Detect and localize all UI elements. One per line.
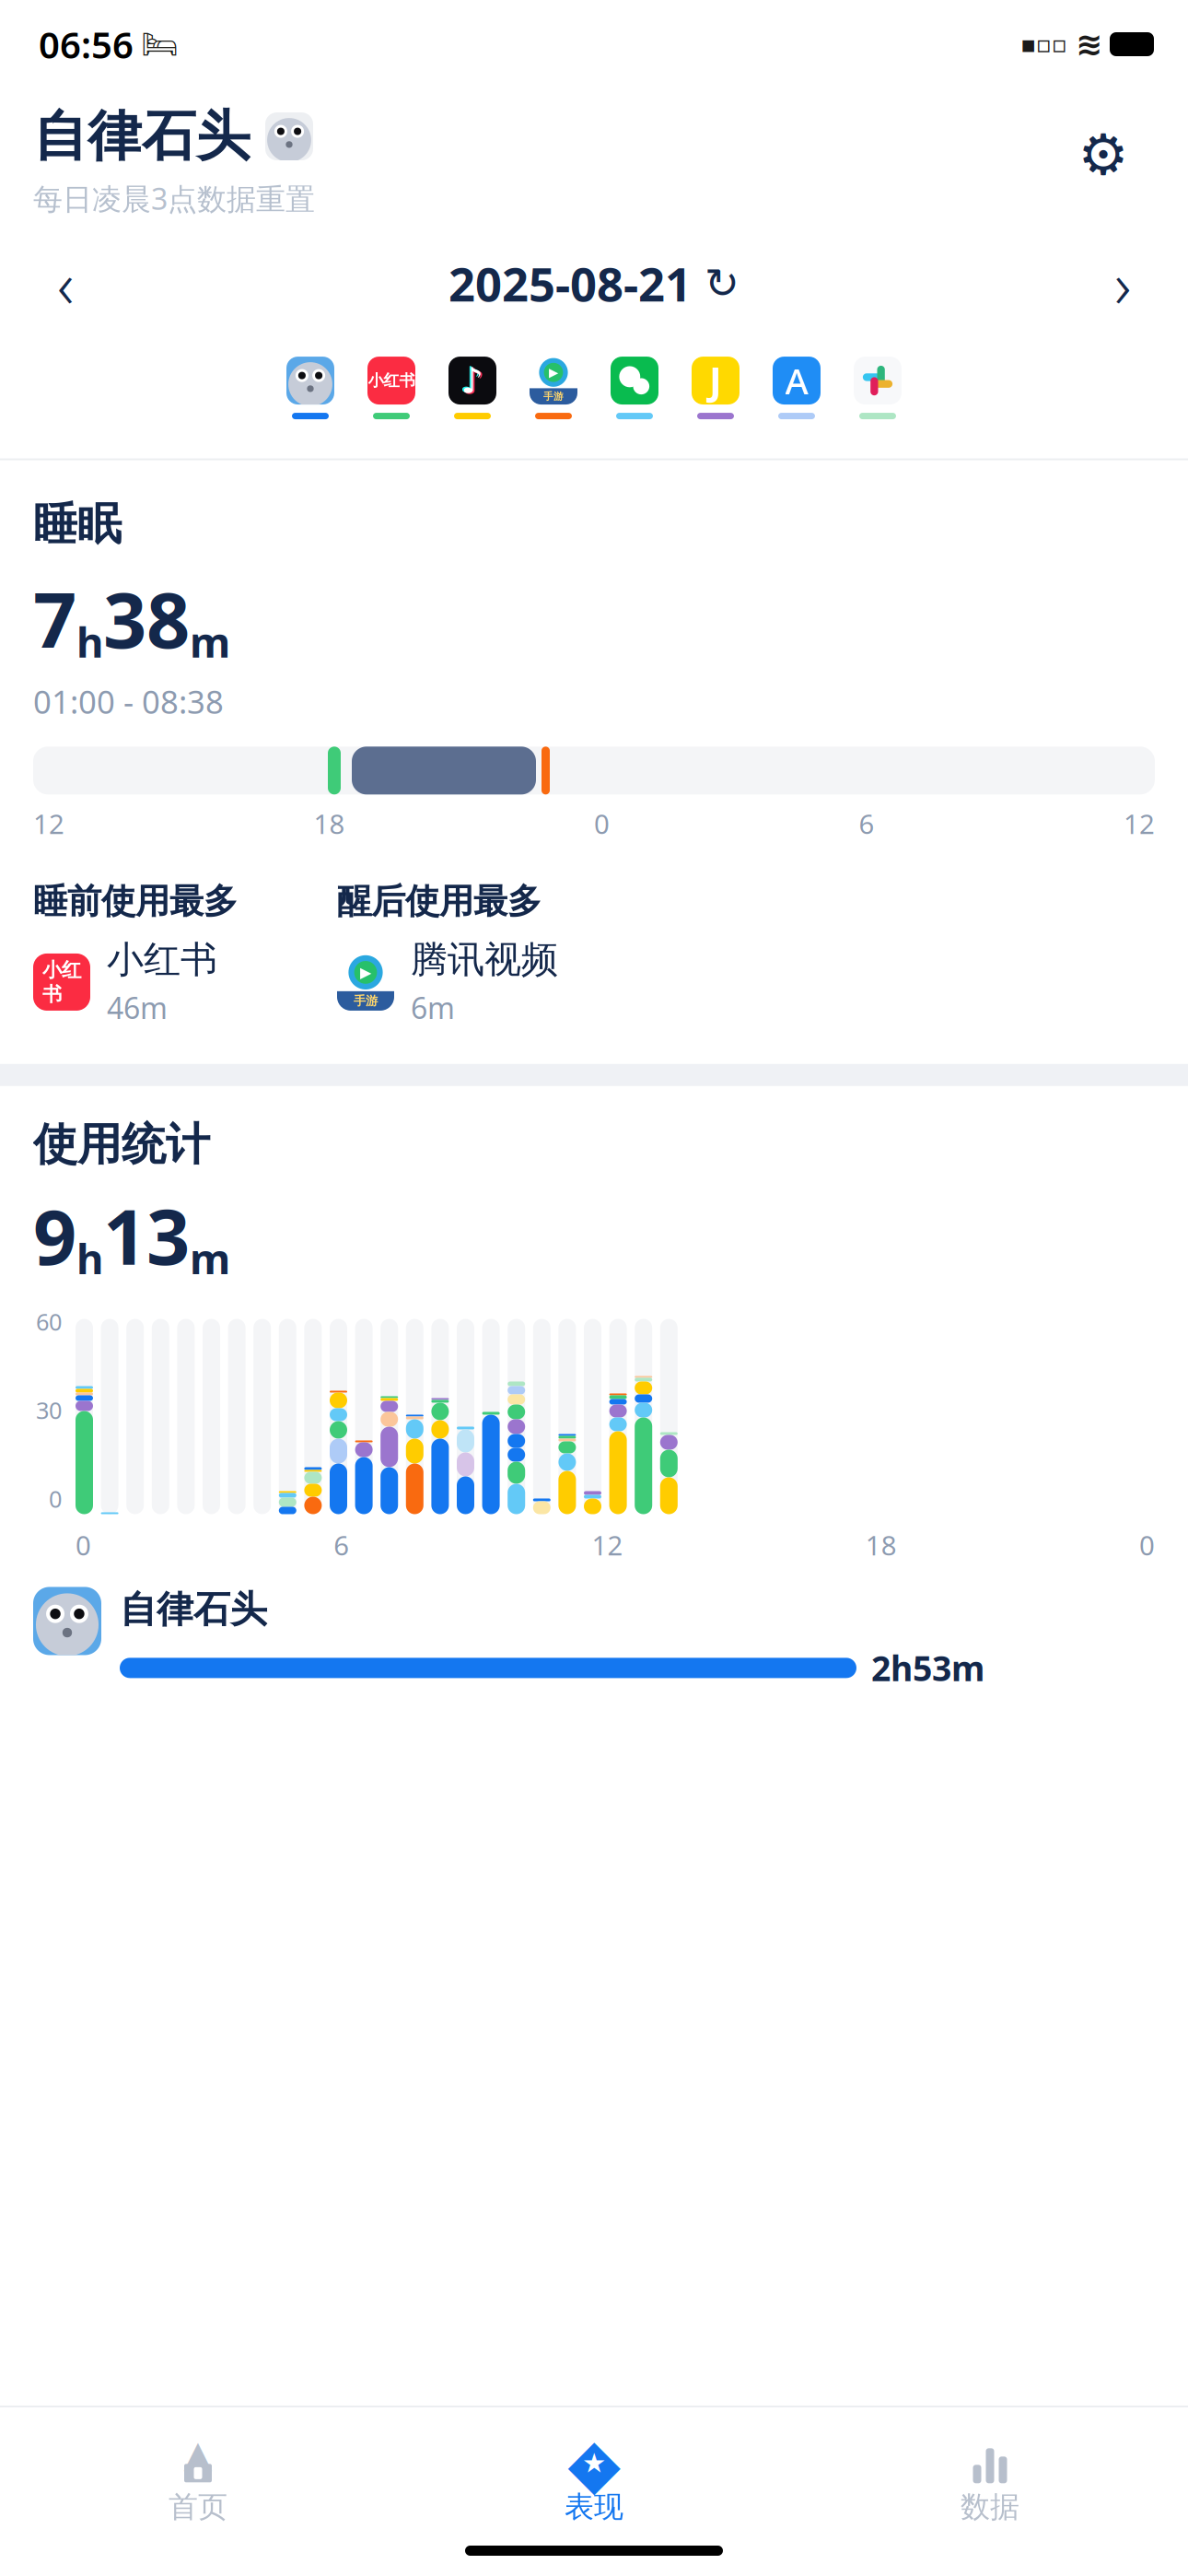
staticText: 38 [103,568,190,669]
button[interactable]: 小红书 [356,343,426,433]
staticText: 自律石头 [33,103,250,170]
staticText: › [1114,241,1131,326]
staticText: 12 [33,806,64,841]
staticText: 12 [592,1527,623,1563]
staticText: 6 [334,1527,349,1563]
staticText: 0 [76,1527,91,1563]
button[interactable]: 腾讯视频 [518,343,588,433]
staticText: 0 [594,806,610,841]
button[interactable]: 自律石头 [33,1587,1155,1691]
button[interactable]: Settings [1052,103,1155,206]
staticText: 腾讯视频 [411,937,558,982]
staticText: ⚙ [1078,123,1129,187]
staticText: 醒后使用最多 [337,880,542,922]
staticText: 使用统计 [33,1117,210,1172]
staticText: h [76,614,103,669]
button[interactable]: 抖音 [437,343,507,433]
staticText: ▲ [184,2433,212,2475]
staticText: 小红书 [107,937,217,982]
staticText: 9 [33,1185,76,1286]
staticText: 睡前使用最多 [33,880,238,922]
staticText: ★ [582,2448,606,2478]
staticText: 06:56 [39,20,134,69]
staticText: m [190,614,230,669]
staticText: ♪ [463,361,486,402]
staticText: 手游 [543,390,564,402]
staticText: 30 [36,1395,62,1426]
staticText: 18 [314,806,345,841]
staticText: ♪ [461,360,484,401]
staticText: A [785,357,808,404]
staticText: ♪ [459,359,482,400]
staticText: h [76,1230,103,1286]
button[interactable]: Slack [843,343,913,433]
staticText: ‹ [57,241,74,326]
staticText: ◆ [568,2424,620,2502]
staticText: 46m [107,988,168,1027]
staticText: 睡眠 [33,497,122,551]
staticText: 2h53m [871,1645,984,1691]
staticText: 0 [1139,1527,1155,1563]
staticText: 6 [859,806,874,841]
button[interactable]: ◆ [396,2443,792,2525]
button[interactable]: Previous day [33,251,98,316]
staticText: 6m [411,988,455,1027]
staticText: 小红书 [42,958,81,1006]
staticText: 自律石头 [120,1587,267,1632]
staticText: 0 [49,1483,62,1514]
button[interactable]: 2025-08-21 [448,252,740,314]
staticText: ≋ [1076,26,1102,62]
staticText: 13 [103,1185,190,1286]
staticText: J [709,355,722,406]
button[interactable]: ▲ [0,2443,396,2525]
staticText: 12 [1124,806,1155,841]
button[interactable]: 微信 [600,343,670,433]
button[interactable]: 即刻 [681,343,751,433]
staticText: 每日凌晨3点数据重置 [33,179,315,218]
staticText: ▶ [360,964,371,981]
staticText: 首页 [169,2489,227,2525]
button[interactable]: Next day [1090,251,1155,316]
button[interactable]: App Store [762,343,832,433]
staticText: 7 [33,568,76,669]
staticText: 表现 [565,2489,623,2525]
staticText: 手游 [354,993,378,1008]
staticText: ▪▫▫ [1020,31,1067,57]
staticText: m [190,1230,230,1286]
staticText: 2025-08-21 [448,252,692,314]
staticText: 60 [36,1306,62,1337]
staticText: ▶ [549,365,558,379]
staticText: 数据 [961,2489,1019,2525]
staticText: 小红书 [368,371,415,390]
staticText: 01:00 - 08:38 [33,680,224,723]
button[interactable]: 数据 [792,2443,1188,2525]
button[interactable]: 自律石头 [275,343,345,433]
staticText: 18 [865,1527,897,1563]
staticText: ↻ [705,260,740,307]
staticText: 🛏 [141,27,179,61]
